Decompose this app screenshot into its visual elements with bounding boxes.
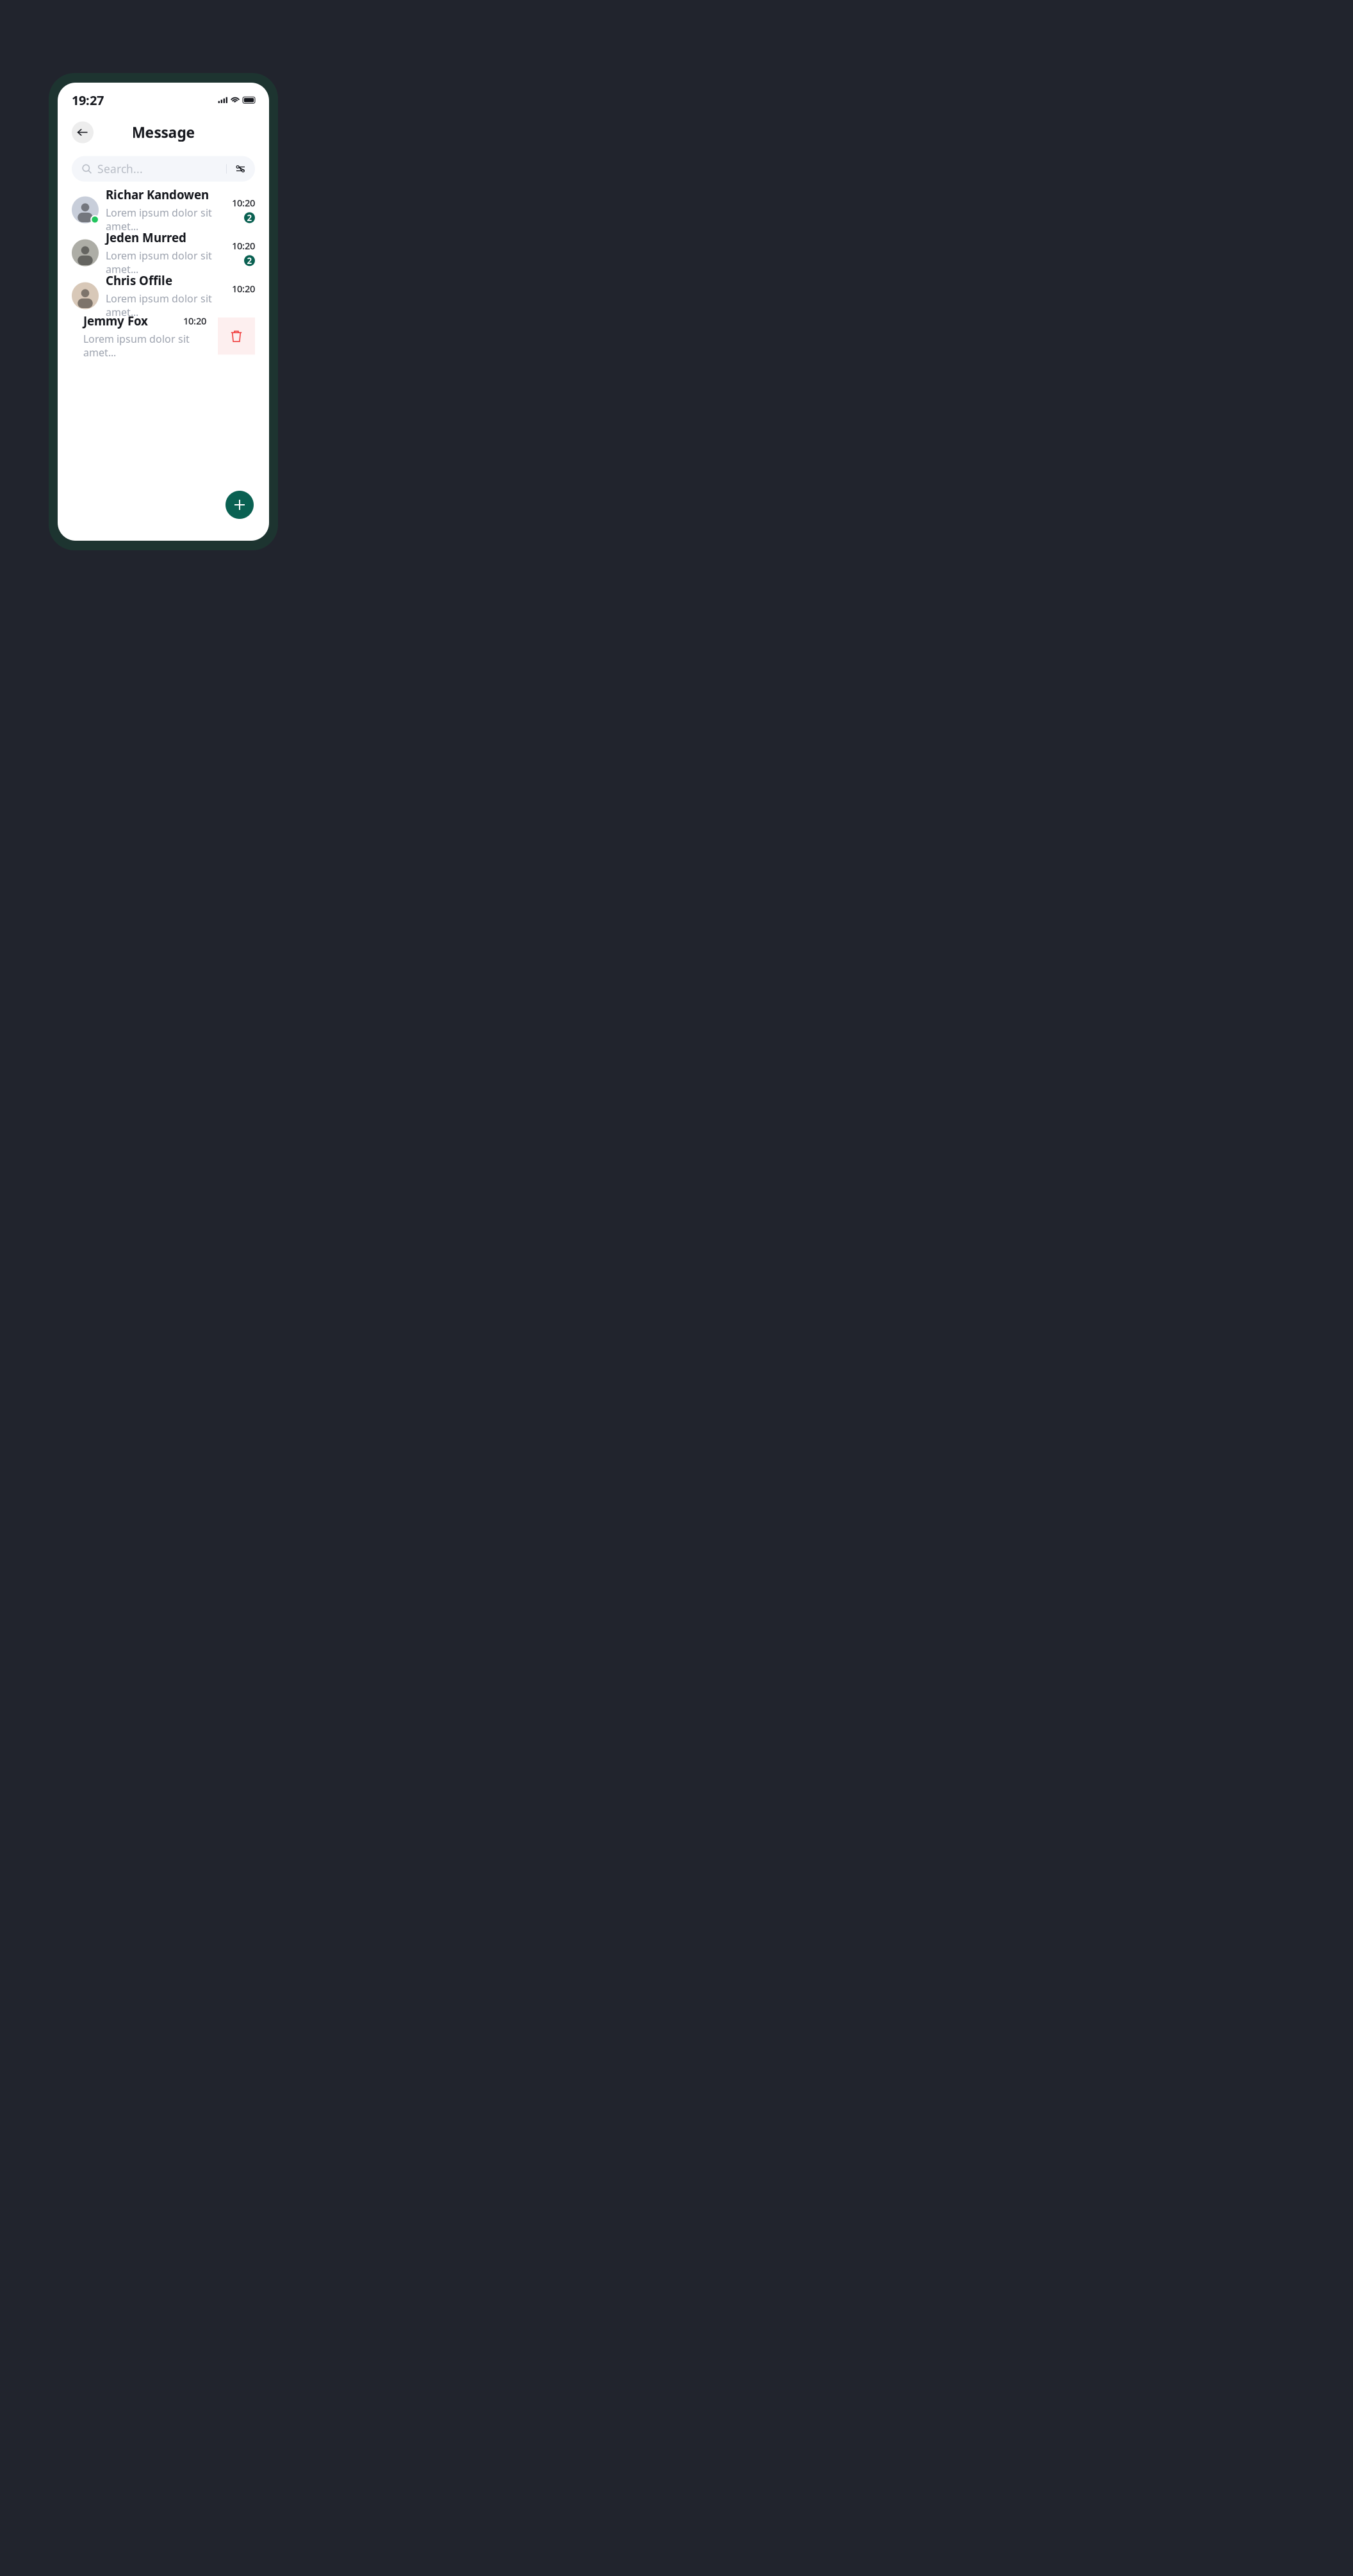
staticText: Chris Offile [106,273,172,288]
staticText: Lorem ipsum dolor sit amet... [106,206,212,233]
staticText: 10:20 [232,239,255,252]
button[interactable]: Richar Kandowen [72,193,255,227]
staticText: Lorem ipsum dolor sit amet... [106,292,212,319]
button[interactable]: New message [225,491,254,519]
staticText: Jemmy Fox [83,313,148,329]
staticText: 19:27 [72,92,104,109]
staticText: Lorem ipsum dolor sit amet... [83,332,190,359]
staticText: 10:20 [232,197,255,209]
button[interactable]: Chris Offile [72,279,255,312]
staticText: 2 [247,255,252,266]
staticText: Lorem ipsum dolor sit amet... [106,249,212,276]
staticText: Search... [97,162,143,176]
button[interactable]: Jeden Murred [72,236,255,269]
button[interactable]: Back [72,121,94,143]
staticText: 10:20 [232,282,255,295]
staticText: Jeden Murred [106,230,186,245]
staticText: Message [132,123,195,142]
staticText: 10:20 [183,315,206,327]
staticText: Richar Kandowen [106,187,209,203]
staticText: 2 [247,212,252,223]
